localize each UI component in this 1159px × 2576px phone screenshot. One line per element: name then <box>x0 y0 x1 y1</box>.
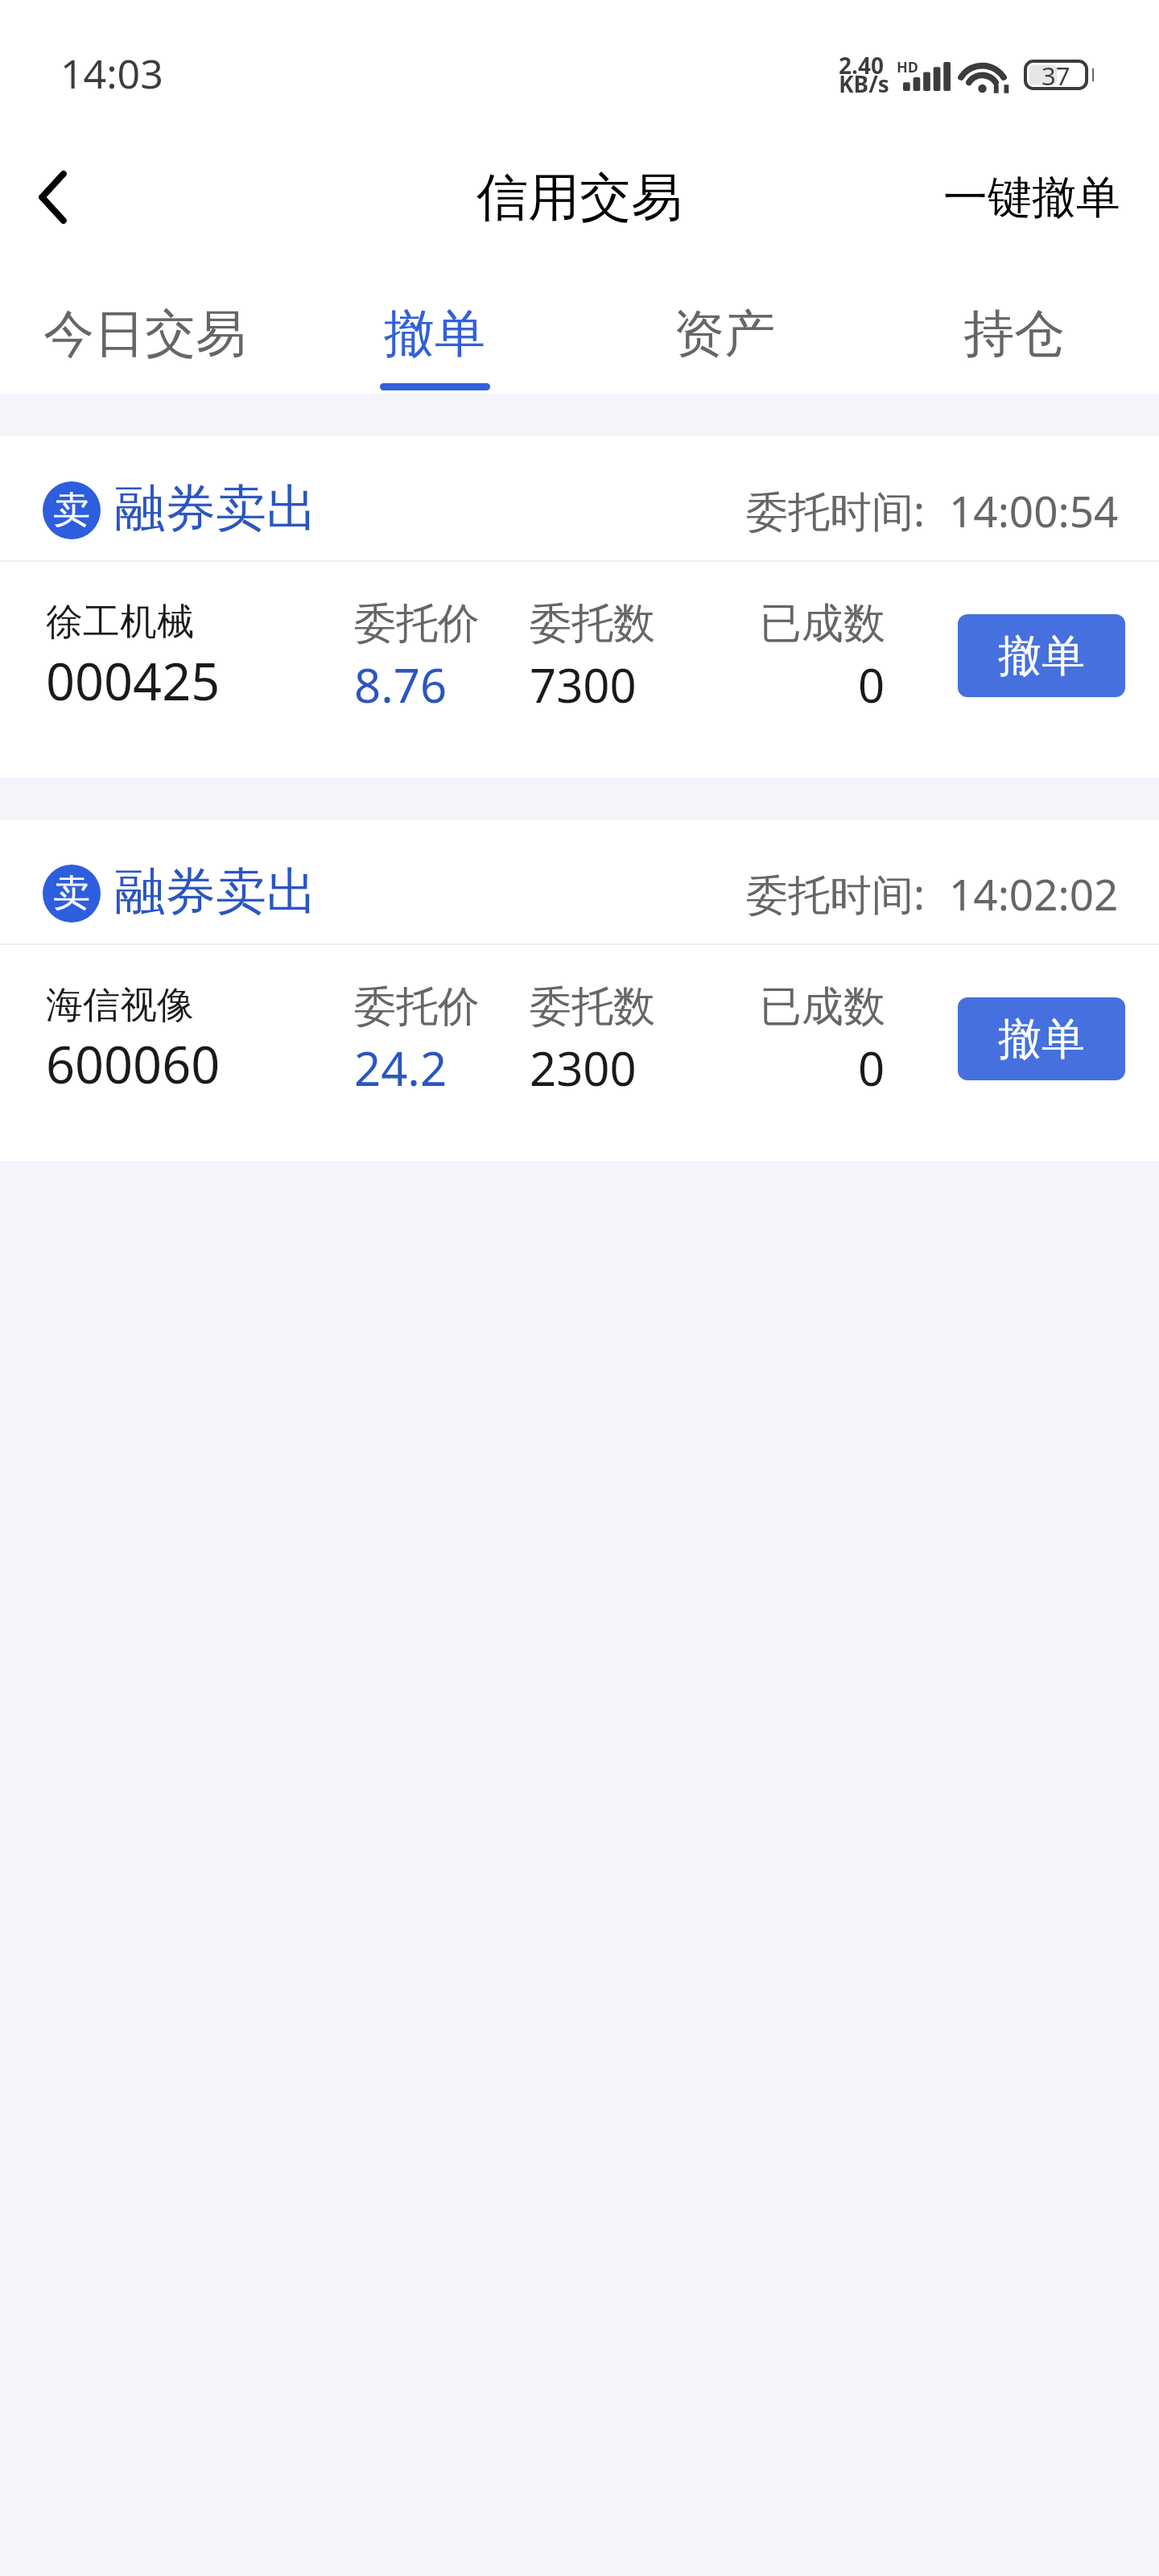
staticText: 卖 <box>53 870 90 917</box>
staticText: 8.76 <box>354 653 448 716</box>
staticText: 14:00:54 <box>949 481 1119 539</box>
staticText: 600060 <box>46 1030 221 1099</box>
staticText: 2300 <box>530 1036 637 1100</box>
staticText: 2.40 <box>839 50 884 80</box>
staticText: 持仓 <box>963 302 1065 365</box>
button[interactable]: 一键撤单 <box>905 137 1159 258</box>
staticText: 撤单 <box>384 302 485 365</box>
button[interactable]: 持仓 <box>869 258 1159 394</box>
staticText: 融券卖出 <box>114 477 317 540</box>
staticText: 徐工机械 <box>46 599 194 646</box>
staticText: 一键撤单 <box>943 170 1120 225</box>
staticText: KB/s <box>839 68 889 99</box>
staticText: 000425 <box>46 646 221 716</box>
button[interactable]: 撤单 <box>958 997 1125 1080</box>
staticText: 7300 <box>530 653 637 716</box>
staticText: 委托时间: <box>746 865 925 922</box>
button[interactable]: 撤单 <box>958 614 1125 697</box>
button[interactable]: 撤单 <box>290 258 579 394</box>
staticText: 14:02:02 <box>949 865 1119 923</box>
button[interactable]: 卖 <box>0 436 1159 778</box>
staticText: 今日交易 <box>43 302 246 365</box>
staticText: 0 <box>858 1036 885 1100</box>
staticText: 14:03 <box>60 46 163 101</box>
staticText: 撤单 <box>998 1012 1085 1067</box>
staticText: 融券卖出 <box>114 860 317 923</box>
staticText: 卖 <box>53 487 90 534</box>
button[interactable]: Back <box>0 145 105 250</box>
staticText: 海信视像 <box>46 982 194 1029</box>
staticText: 委托时间: <box>746 481 925 539</box>
button[interactable]: 今日交易 <box>0 258 290 394</box>
button[interactable]: 资产 <box>579 258 869 394</box>
staticText: 资产 <box>674 302 775 365</box>
staticText: 0 <box>858 653 885 716</box>
staticText: HD <box>897 57 918 77</box>
staticText: 委托数 <box>530 597 655 650</box>
staticText: 撤单 <box>998 629 1085 683</box>
staticText: 37 <box>1041 59 1070 89</box>
staticText: 信用交易 <box>476 165 683 230</box>
staticText: 已成数 <box>760 597 885 650</box>
staticText: 委托价 <box>354 597 480 650</box>
staticText: 已成数 <box>760 980 885 1034</box>
staticText: 委托价 <box>354 980 480 1034</box>
staticText: 24.2 <box>354 1036 448 1100</box>
staticText: 委托数 <box>530 980 655 1034</box>
button[interactable]: 卖 <box>0 819 1159 1161</box>
